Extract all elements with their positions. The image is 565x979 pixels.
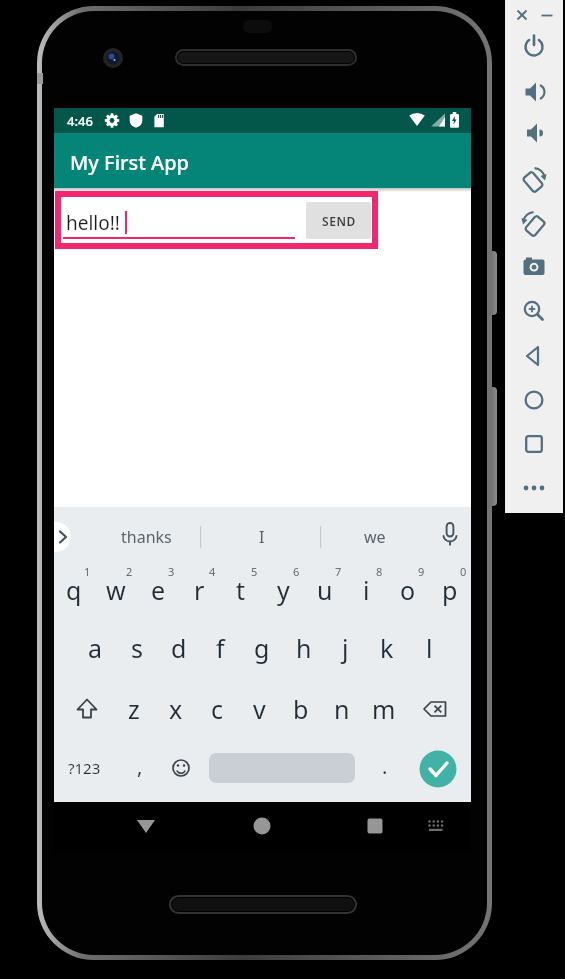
button[interactable]: t <box>221 573 261 607</box>
button[interactable]: l <box>409 631 449 665</box>
staticText: q <box>66 573 82 607</box>
staticText: thanks <box>121 526 172 548</box>
staticText: c <box>211 692 224 726</box>
button[interactable]: z <box>114 692 154 726</box>
staticText: e <box>151 573 166 607</box>
staticText: v <box>253 692 266 726</box>
staticText: ?123 <box>68 758 101 778</box>
button[interactable]: q <box>54 573 94 607</box>
button[interactable] <box>512 25 556 69</box>
button[interactable]: thanks <box>106 520 186 554</box>
staticText: I <box>259 526 265 548</box>
staticText: 7 <box>335 564 342 579</box>
button[interactable] <box>61 197 372 243</box>
button[interactable] <box>415 692 459 726</box>
button[interactable] <box>417 808 453 844</box>
button[interactable]: f <box>200 631 240 665</box>
button[interactable] <box>512 158 556 202</box>
staticText: j <box>342 631 349 665</box>
button[interactable]: k <box>367 631 407 665</box>
button[interactable] <box>512 378 556 422</box>
staticText: t <box>236 573 246 607</box>
button[interactable] <box>512 334 556 378</box>
button[interactable]: j <box>325 631 365 665</box>
staticText: s <box>131 631 143 665</box>
staticText: 1 <box>84 564 91 579</box>
staticText: w <box>106 573 126 607</box>
button[interactable]: ?123 <box>60 751 108 785</box>
button[interactable]: y <box>263 573 303 607</box>
staticText: hello!! <box>66 210 120 236</box>
button[interactable] <box>512 466 556 510</box>
staticText: . <box>382 753 388 780</box>
staticText: My First App <box>70 149 190 176</box>
staticText: , <box>137 753 143 780</box>
staticText: 2 <box>126 564 133 579</box>
button[interactable] <box>512 111 556 155</box>
staticText: 4:46 <box>67 112 93 130</box>
button[interactable]: h <box>284 631 324 665</box>
staticText: y <box>277 573 290 607</box>
button[interactable] <box>512 70 556 114</box>
button[interactable]: b <box>281 692 321 726</box>
staticText: i <box>363 573 370 607</box>
button[interactable]: x <box>156 692 196 726</box>
staticText: 5 <box>251 564 258 579</box>
button[interactable]: m <box>364 692 404 726</box>
staticText: u <box>317 573 333 607</box>
button[interactable] <box>416 747 460 791</box>
button[interactable]: e <box>138 573 178 607</box>
staticText: a <box>88 631 103 665</box>
staticText: l <box>426 631 433 665</box>
staticText: f <box>216 631 225 665</box>
staticText: m <box>372 692 396 726</box>
staticText: z <box>128 692 140 726</box>
staticText: we <box>364 526 386 548</box>
button[interactable]: . <box>370 749 400 783</box>
button[interactable] <box>538 6 556 24</box>
staticText: 3 <box>168 564 175 579</box>
staticText: SEND <box>322 213 356 229</box>
button[interactable]: u <box>305 573 345 607</box>
button[interactable] <box>65 692 109 726</box>
button[interactable] <box>512 245 556 289</box>
button[interactable]: p <box>430 573 470 607</box>
button[interactable]: a <box>75 631 115 665</box>
staticText: n <box>334 692 350 726</box>
button[interactable]: o <box>388 573 428 607</box>
staticText: b <box>293 692 309 726</box>
button[interactable]: SEND <box>306 202 371 239</box>
button[interactable]: d <box>159 631 199 665</box>
button[interactable]: s <box>117 631 157 665</box>
staticText: g <box>254 631 270 665</box>
button[interactable]: I <box>238 520 286 554</box>
staticText: h <box>296 631 312 665</box>
staticText: 4 <box>209 564 216 579</box>
button[interactable] <box>128 808 164 844</box>
button[interactable]: r <box>179 573 219 607</box>
button[interactable]: i <box>346 573 386 607</box>
button[interactable] <box>512 202 556 246</box>
button[interactable]: g <box>242 631 282 665</box>
button[interactable]: we <box>345 520 405 554</box>
staticText: d <box>171 631 187 665</box>
button[interactable]: n <box>322 692 362 726</box>
button[interactable] <box>159 751 203 785</box>
staticText: k <box>380 631 394 665</box>
button[interactable]: w <box>96 573 136 607</box>
button[interactable]: v <box>239 692 279 726</box>
staticText: 9 <box>418 564 425 579</box>
button[interactable] <box>512 289 556 333</box>
button[interactable] <box>513 6 531 24</box>
button[interactable]: , <box>125 749 155 783</box>
button[interactable]: c <box>197 692 237 726</box>
staticText: r <box>194 573 205 607</box>
button[interactable] <box>357 808 393 844</box>
staticText: 0 <box>460 564 467 579</box>
staticText: 6 <box>293 564 300 579</box>
button[interactable] <box>244 808 280 844</box>
staticText: o <box>400 573 416 607</box>
staticText: x <box>169 692 183 726</box>
button[interactable] <box>512 422 556 466</box>
